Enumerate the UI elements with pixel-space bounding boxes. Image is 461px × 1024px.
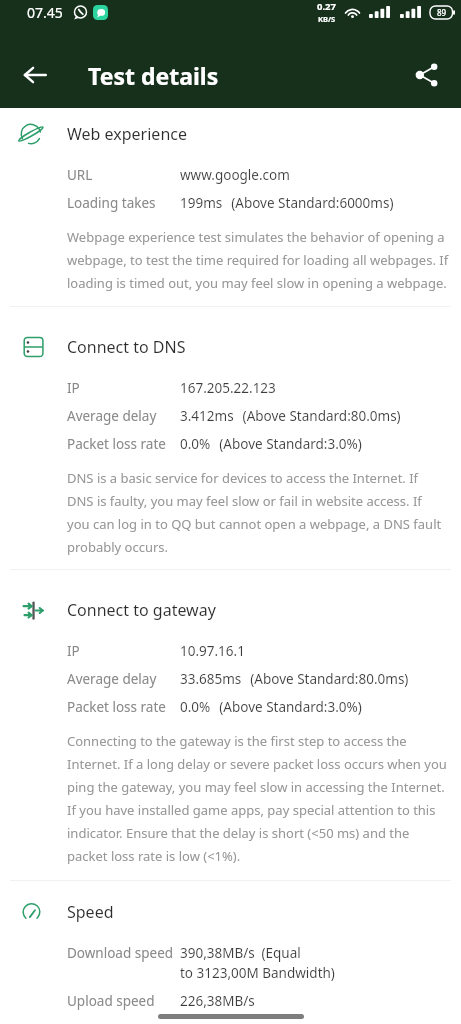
staticText: 199ms (Above Standard:6000ms) <box>180 194 394 212</box>
staticText: 0.0% (Above Standard:3.0%) <box>180 435 362 453</box>
staticText: Connect to DNS <box>67 336 186 358</box>
staticText: Upload speed <box>67 992 155 1010</box>
staticText: 390,38MB/s (Equal to 3123,00M Bandwidth) <box>180 944 335 982</box>
staticText: 10.97.16.1 <box>180 642 245 660</box>
staticText: Connecting to the gateway is the first s… <box>67 732 447 865</box>
staticText: Speed <box>67 901 114 923</box>
staticText: IP <box>67 642 80 660</box>
staticText: 33.685ms (Above Standard:80.0ms) <box>180 670 409 688</box>
staticText: Download speed <box>67 944 174 962</box>
staticText: Test details <box>88 60 219 91</box>
staticText: Packet loss rate <box>67 698 166 716</box>
staticText: 167.205.22.123 <box>180 379 276 397</box>
button[interactable]: Connect to gateway <box>0 596 461 624</box>
staticText: 0.27 <box>317 0 336 13</box>
button[interactable]: Share <box>399 47 455 103</box>
staticText: Web experience <box>67 123 187 145</box>
staticText: 3.412ms (Above Standard:80.0ms) <box>180 407 401 425</box>
staticText: 0.0% (Above Standard:3.0%) <box>180 698 362 716</box>
staticText: 89 <box>437 7 447 18</box>
staticText: 226,38MB/s <box>180 992 255 1010</box>
staticText: Loading takes <box>67 194 156 212</box>
staticText: Average delay <box>67 407 157 425</box>
staticText: URL <box>67 166 93 184</box>
staticText: 07.45 <box>27 3 63 22</box>
staticText: DNS is a basic service for devices to ac… <box>67 469 442 556</box>
staticText: Webpage experience test simulates the be… <box>67 228 449 292</box>
button[interactable]: Connect to DNS <box>0 333 461 361</box>
staticText: www.google.com <box>180 166 290 184</box>
button[interactable]: Speed <box>0 898 461 926</box>
button[interactable]: Back <box>7 47 63 103</box>
button[interactable]: Web experience <box>0 120 461 148</box>
staticText: Packet loss rate <box>67 435 166 453</box>
staticText: Connect to gateway <box>67 599 216 621</box>
staticText: KB/S <box>318 14 336 24</box>
staticText: Average delay <box>67 670 157 688</box>
staticText: IP <box>67 379 80 397</box>
